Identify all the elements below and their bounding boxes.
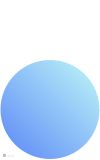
staticText: arty <box>7 153 14 158</box>
